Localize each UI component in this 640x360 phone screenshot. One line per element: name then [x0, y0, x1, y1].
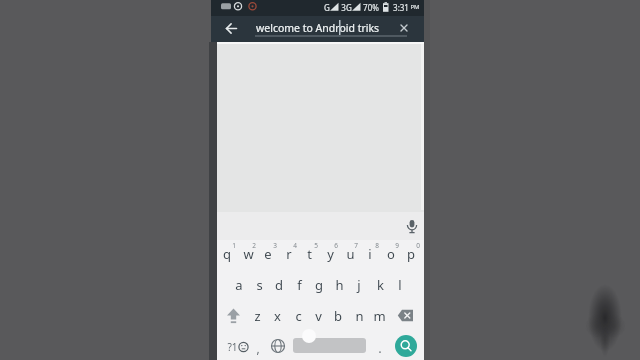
staticText: 3G	[341, 2, 352, 13]
button[interactable]: ,	[253, 340, 263, 356]
staticText: x	[274, 307, 281, 325]
staticText: v	[315, 307, 322, 325]
staticText: h	[335, 276, 344, 294]
staticText: 3:31	[393, 2, 409, 13]
staticText: ,	[256, 340, 260, 356]
button[interactable]: w	[238, 243, 258, 265]
staticText: .	[378, 339, 382, 355]
button[interactable]: e	[258, 243, 278, 265]
button[interactable]: p	[401, 243, 421, 265]
button[interactable]	[223, 20, 240, 37]
button[interactable]: u	[340, 243, 360, 265]
button[interactable]: r	[279, 243, 299, 265]
staticText: d	[275, 276, 283, 294]
staticText: f	[297, 276, 302, 294]
button[interactable]: n	[349, 305, 369, 327]
staticText: welcome to Android triks	[256, 21, 380, 35]
button[interactable]: g	[309, 274, 329, 296]
staticText: 6	[334, 241, 338, 250]
staticText: o	[387, 245, 395, 263]
button[interactable]: y	[320, 243, 340, 265]
button[interactable]: l	[390, 274, 410, 296]
staticText: 5	[314, 241, 318, 250]
button[interactable]: t	[299, 243, 319, 265]
staticText: p	[407, 245, 415, 263]
staticText: r	[286, 245, 292, 263]
staticText: e	[264, 245, 272, 263]
button[interactable]: q	[217, 243, 237, 265]
button[interactable]	[404, 218, 420, 236]
staticText: a	[235, 276, 243, 294]
staticText: n	[355, 307, 364, 325]
button[interactable]	[269, 337, 287, 355]
staticText: 2	[252, 241, 256, 250]
staticText: b	[334, 307, 342, 325]
button[interactable]: s	[249, 274, 269, 296]
button[interactable]: h	[329, 274, 349, 296]
button[interactable]: i	[360, 243, 380, 265]
button[interactable]: ?1	[223, 339, 241, 355]
button[interactable]: j	[349, 274, 369, 296]
staticText: i	[368, 245, 372, 263]
staticText: 70%	[363, 2, 379, 13]
button[interactable]: f	[289, 274, 309, 296]
staticText: g	[315, 276, 323, 294]
staticText: k	[377, 276, 384, 294]
staticText: ?1	[227, 340, 238, 354]
staticText: s	[256, 276, 263, 294]
staticText: c	[295, 307, 302, 325]
button[interactable]: d	[269, 274, 289, 296]
button[interactable]: v	[308, 305, 328, 327]
button[interactable]: a	[229, 274, 249, 296]
staticText: 0	[416, 241, 420, 250]
button[interactable]	[396, 307, 416, 325]
staticText: z	[254, 307, 261, 325]
button[interactable]	[397, 21, 411, 35]
staticText: 9	[395, 241, 399, 250]
button[interactable]: m	[369, 305, 389, 327]
staticText: w	[243, 245, 254, 263]
button[interactable]	[395, 335, 417, 357]
button[interactable]	[293, 338, 366, 353]
staticText: q	[223, 245, 231, 263]
button[interactable]: z	[247, 305, 267, 327]
staticText: 3	[273, 241, 277, 250]
staticText: j	[357, 276, 361, 294]
staticText: m	[373, 307, 386, 325]
staticText: G	[324, 2, 330, 13]
button[interactable]: c	[288, 305, 308, 327]
staticText: 4	[293, 241, 297, 250]
staticText: t	[307, 245, 312, 263]
button[interactable]: o	[381, 243, 401, 265]
staticText: 8	[375, 241, 379, 250]
staticText: 7	[354, 241, 358, 250]
staticText: PM	[410, 3, 420, 11]
staticText: l	[398, 276, 402, 294]
staticText: u	[346, 245, 355, 263]
staticText: 1	[232, 241, 236, 250]
button[interactable]	[224, 306, 243, 326]
staticText: y	[327, 245, 334, 263]
button[interactable]: x	[267, 305, 287, 327]
button[interactable]: k	[370, 274, 390, 296]
button[interactable]: b	[328, 305, 348, 327]
button[interactable]: .	[374, 339, 386, 355]
